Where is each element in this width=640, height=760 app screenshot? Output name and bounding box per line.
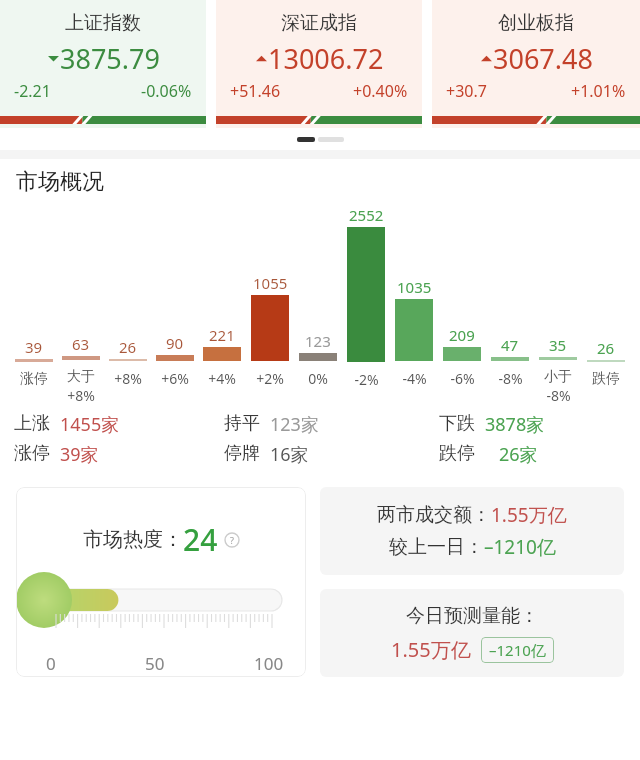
staticText: 下跌 (439, 412, 475, 435)
staticText: 市场概况 (16, 168, 104, 196)
staticText: 26家 (499, 442, 538, 467)
staticText: 123家 (270, 412, 319, 437)
staticText: 3878家 (485, 412, 545, 437)
staticText: 100 (254, 652, 284, 675)
staticText: 停牌 (224, 442, 260, 465)
staticText: 24 (183, 519, 218, 560)
staticText: 跌停 (439, 442, 475, 465)
staticText: -2.21 (14, 80, 51, 102)
staticText: 16家 (270, 442, 309, 467)
staticText: +30.7 (446, 80, 487, 102)
staticText: ? (230, 534, 234, 546)
staticText: -8% (546, 386, 571, 405)
button[interactable]: 两市成交额： (320, 487, 624, 575)
staticText: 35 (549, 335, 567, 355)
staticText: 小于 (544, 368, 572, 386)
staticText: –1210亿 (484, 534, 556, 560)
staticText: +8% (67, 386, 95, 405)
staticText: 0 (46, 652, 56, 675)
staticText: 26 (597, 338, 615, 358)
staticText: +4% (208, 369, 236, 388)
staticText: 39 (25, 337, 43, 357)
staticText: +51.46 (230, 80, 281, 102)
staticText: 上涨 (14, 412, 50, 435)
staticText: 2552 (349, 205, 384, 225)
staticText: -8% (498, 369, 523, 388)
staticText: 涨停 (14, 442, 50, 465)
staticText: 大于 (67, 368, 95, 386)
staticText: 创业板指 (498, 11, 574, 35)
staticText: 123 (305, 331, 331, 351)
staticText: 13006.72 (268, 40, 384, 77)
staticText: 市场热度： (83, 527, 183, 552)
staticText: 持平 (224, 412, 260, 435)
staticText: 47 (501, 335, 519, 355)
staticText: 3875.79 (60, 40, 160, 77)
staticText: 跌停 (592, 370, 620, 388)
staticText: 3067.48 (493, 40, 593, 77)
staticText: 1.55万亿 (391, 636, 471, 663)
staticText: 涨停 (20, 370, 48, 388)
staticText: 两市成交额： (377, 503, 491, 527)
staticText: 221 (209, 325, 235, 345)
button[interactable]: 帮助 (224, 532, 240, 548)
staticText: +1.01% (571, 80, 626, 102)
button[interactable]: 今日预测量能： (320, 589, 624, 677)
staticText: +8% (114, 369, 142, 388)
staticText: 90 (166, 333, 184, 353)
staticText: 1055 (253, 273, 288, 293)
staticText: 1455家 (60, 412, 120, 437)
staticText: 今日预测量能： (406, 604, 539, 628)
staticText: +0.40% (353, 80, 408, 102)
staticText: 深证成指 (281, 11, 357, 35)
staticText: 上证指数 (65, 11, 141, 35)
button[interactable]: 市场热度： (16, 487, 306, 677)
staticText: -0.06% (141, 80, 192, 102)
staticText: +2% (256, 369, 284, 388)
staticText: 1035 (397, 277, 432, 297)
staticText: 39家 (60, 442, 99, 467)
staticText: 63 (72, 334, 90, 354)
staticText: +6% (161, 369, 189, 388)
staticText: -4% (402, 369, 427, 388)
button[interactable]: 上证指数 (0, 0, 206, 128)
staticText: 1.55万亿 (491, 502, 567, 528)
staticText: 50 (145, 652, 165, 675)
button[interactable]: 创业板指 (432, 0, 640, 128)
staticText: -6% (450, 369, 475, 388)
staticText: 较上一日： (389, 535, 484, 559)
staticText: –1210亿 (489, 640, 546, 660)
staticText: -2% (354, 370, 379, 389)
button[interactable]: 深证成指 (216, 0, 422, 128)
staticText: 26 (119, 337, 137, 357)
staticText: 0% (308, 369, 328, 388)
staticText: 209 (449, 325, 475, 345)
